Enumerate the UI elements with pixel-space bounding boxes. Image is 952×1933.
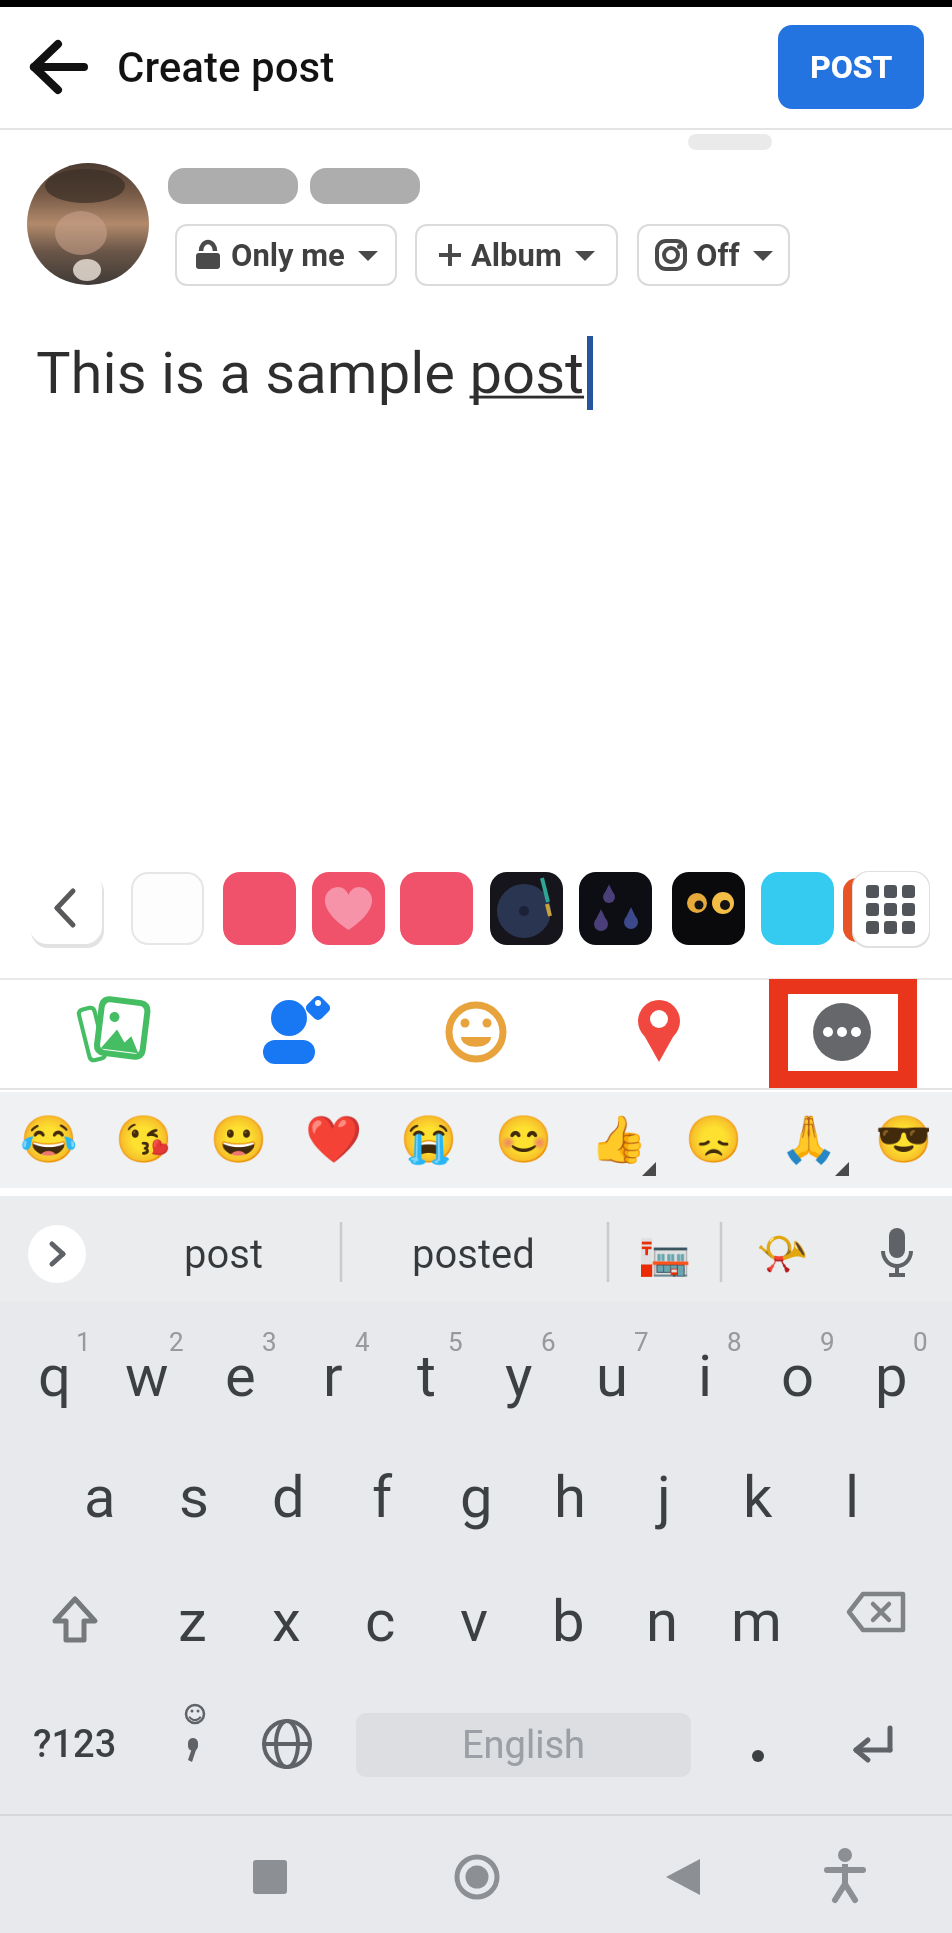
staticText: 😊	[495, 1112, 553, 1166]
button[interactable]: q	[8, 1329, 100, 1423]
staticText: s	[179, 1463, 209, 1531]
button[interactable]	[630, 1836, 730, 1920]
button[interactable]: o	[752, 1329, 844, 1423]
button[interactable]: ?123	[25, 1700, 125, 1788]
button[interactable]: ❤️	[299, 1104, 369, 1174]
button[interactable]	[427, 1836, 527, 1920]
button[interactable]: 👍	[584, 1104, 654, 1174]
button[interactable]	[490, 872, 563, 945]
staticText: x	[272, 1587, 301, 1655]
button[interactable]	[252, 990, 336, 1074]
button[interactable]	[761, 872, 834, 945]
button[interactable]	[30, 1574, 120, 1668]
button[interactable]: l	[806, 1450, 898, 1544]
button[interactable]: n	[616, 1574, 708, 1668]
button[interactable]	[28, 1225, 86, 1283]
button[interactable]: f	[336, 1450, 428, 1544]
staticText: z	[178, 1587, 207, 1655]
staticText: 6	[541, 1327, 556, 1357]
button[interactable]: post	[154, 1225, 294, 1283]
staticText: w	[125, 1342, 169, 1410]
button[interactable]: POST	[778, 25, 924, 109]
button[interactable]	[672, 872, 745, 945]
staticText: 😀	[210, 1112, 268, 1166]
staticText: t	[417, 1342, 436, 1410]
button[interactable]: posted	[398, 1225, 548, 1283]
staticText: 😘	[115, 1112, 173, 1166]
button[interactable]: Only me	[175, 224, 397, 286]
button[interactable]: r	[287, 1329, 379, 1423]
button[interactable]	[716, 1698, 800, 1790]
button[interactable]: Off	[637, 224, 790, 286]
staticText: 2	[169, 1327, 184, 1357]
button[interactable]: e	[194, 1329, 286, 1423]
button[interactable]: a	[54, 1450, 146, 1544]
button[interactable]: b	[522, 1574, 614, 1668]
button[interactable]: 😞	[679, 1104, 749, 1174]
button[interactable]: t	[380, 1329, 472, 1423]
staticText: This is a sample post	[36, 339, 585, 407]
button[interactable]: x	[240, 1574, 332, 1668]
staticText: post	[184, 1231, 264, 1278]
button[interactable]: 😭	[394, 1104, 464, 1174]
button[interactable]: p	[845, 1329, 937, 1423]
button[interactable]	[20, 40, 100, 94]
staticText: 😭	[400, 1112, 458, 1166]
button[interactable]	[27, 163, 149, 285]
staticText: 🏣	[638, 1229, 691, 1278]
button[interactable]	[826, 1698, 918, 1790]
button[interactable]: v	[428, 1574, 520, 1668]
button[interactable]	[223, 872, 296, 945]
button[interactable]: 😘	[109, 1104, 179, 1174]
staticText: 9	[820, 1327, 835, 1357]
button[interactable]: c	[334, 1574, 426, 1668]
button[interactable]: g	[430, 1450, 522, 1544]
button[interactable]: i	[659, 1329, 751, 1423]
button[interactable]	[312, 872, 385, 945]
staticText: 1	[76, 1327, 91, 1357]
staticText: g	[460, 1463, 493, 1531]
button[interactable]: z	[146, 1574, 238, 1668]
button[interactable]	[865, 1222, 929, 1286]
staticText: f	[372, 1463, 393, 1531]
button[interactable]: 😂	[14, 1104, 84, 1174]
button[interactable]: k	[712, 1450, 804, 1544]
button[interactable]	[150, 1698, 236, 1790]
button[interactable]: 🙏	[774, 1104, 844, 1174]
button[interactable]: English	[356, 1713, 691, 1777]
button[interactable]	[434, 990, 518, 1074]
button[interactable]	[617, 990, 701, 1074]
button[interactable]	[30, 872, 103, 945]
button[interactable]	[131, 872, 204, 945]
staticText: 7	[634, 1327, 649, 1357]
button[interactable]: 😎	[869, 1104, 939, 1174]
button[interactable]: 🏣	[629, 1218, 699, 1288]
button[interactable]	[795, 1836, 895, 1920]
button[interactable]	[769, 979, 917, 1089]
staticText: p	[875, 1342, 908, 1410]
button[interactable]	[400, 872, 473, 945]
button[interactable]: 😀	[204, 1104, 274, 1174]
button[interactable]: j	[618, 1450, 710, 1544]
button[interactable]: w	[101, 1329, 193, 1423]
button[interactable]: y	[473, 1329, 565, 1423]
button[interactable]: Album	[415, 224, 618, 286]
button[interactable]	[244, 1698, 330, 1790]
staticText: 👍	[590, 1112, 648, 1166]
button[interactable]	[843, 870, 938, 948]
button[interactable]: m	[710, 1574, 802, 1668]
button[interactable]: 😊	[489, 1104, 559, 1174]
button[interactable]	[220, 1836, 320, 1920]
button[interactable]: 📯	[747, 1218, 817, 1288]
button[interactable]	[830, 1574, 922, 1668]
button[interactable]: u	[566, 1329, 658, 1423]
button[interactable]	[579, 872, 652, 945]
staticText: h	[554, 1463, 586, 1531]
staticText: a	[84, 1463, 116, 1531]
staticText: 📯	[756, 1229, 809, 1278]
button[interactable]: h	[524, 1450, 616, 1544]
staticText: b	[552, 1587, 585, 1655]
button[interactable]	[70, 990, 154, 1074]
button[interactable]: d	[242, 1450, 334, 1544]
button[interactable]: s	[148, 1450, 240, 1544]
